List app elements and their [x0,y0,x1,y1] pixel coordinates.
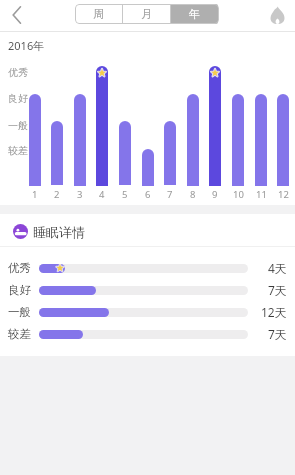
button[interactable]: 周 [75,4,122,24]
staticText: 睡眠详情 [33,224,85,240]
staticText: 6 [145,188,151,201]
staticText: 11 [256,188,267,201]
staticText: 周 [93,7,104,21]
staticText: 12 [278,188,289,201]
staticText: 10 [233,188,244,201]
staticText: 4 [99,188,105,201]
staticText: 12天 [261,304,287,320]
staticText: 7 [167,188,173,201]
button[interactable] [0,257,295,279]
staticText: 优秀 [8,261,31,275]
staticText: 年 [189,7,200,21]
button[interactable] [264,2,290,28]
staticText: 较差 [8,144,28,157]
button[interactable] [3,1,31,28]
button[interactable]: 年 [171,4,218,24]
staticText: 9 [212,188,218,201]
staticText: 5 [122,188,128,201]
staticText: 月 [141,7,152,21]
staticText: 一般 [8,305,31,319]
staticText: 良好 [8,283,31,297]
staticText: 良好 [8,92,28,105]
staticText: 3 [77,188,83,201]
staticText: 7天 [268,326,287,342]
button[interactable] [0,301,295,323]
button[interactable] [0,323,295,345]
staticText: 2 [54,188,60,201]
staticText: 2016年 [8,38,45,53]
staticText: 8 [190,188,196,201]
staticText: 优秀 [8,66,28,79]
staticText: 较差 [8,327,31,341]
staticText: 4天 [268,260,287,276]
staticText: 1 [32,188,38,201]
staticText: 一般 [8,119,28,132]
button[interactable] [0,279,295,301]
staticText: 7天 [268,282,287,298]
button[interactable]: 月 [123,4,170,24]
